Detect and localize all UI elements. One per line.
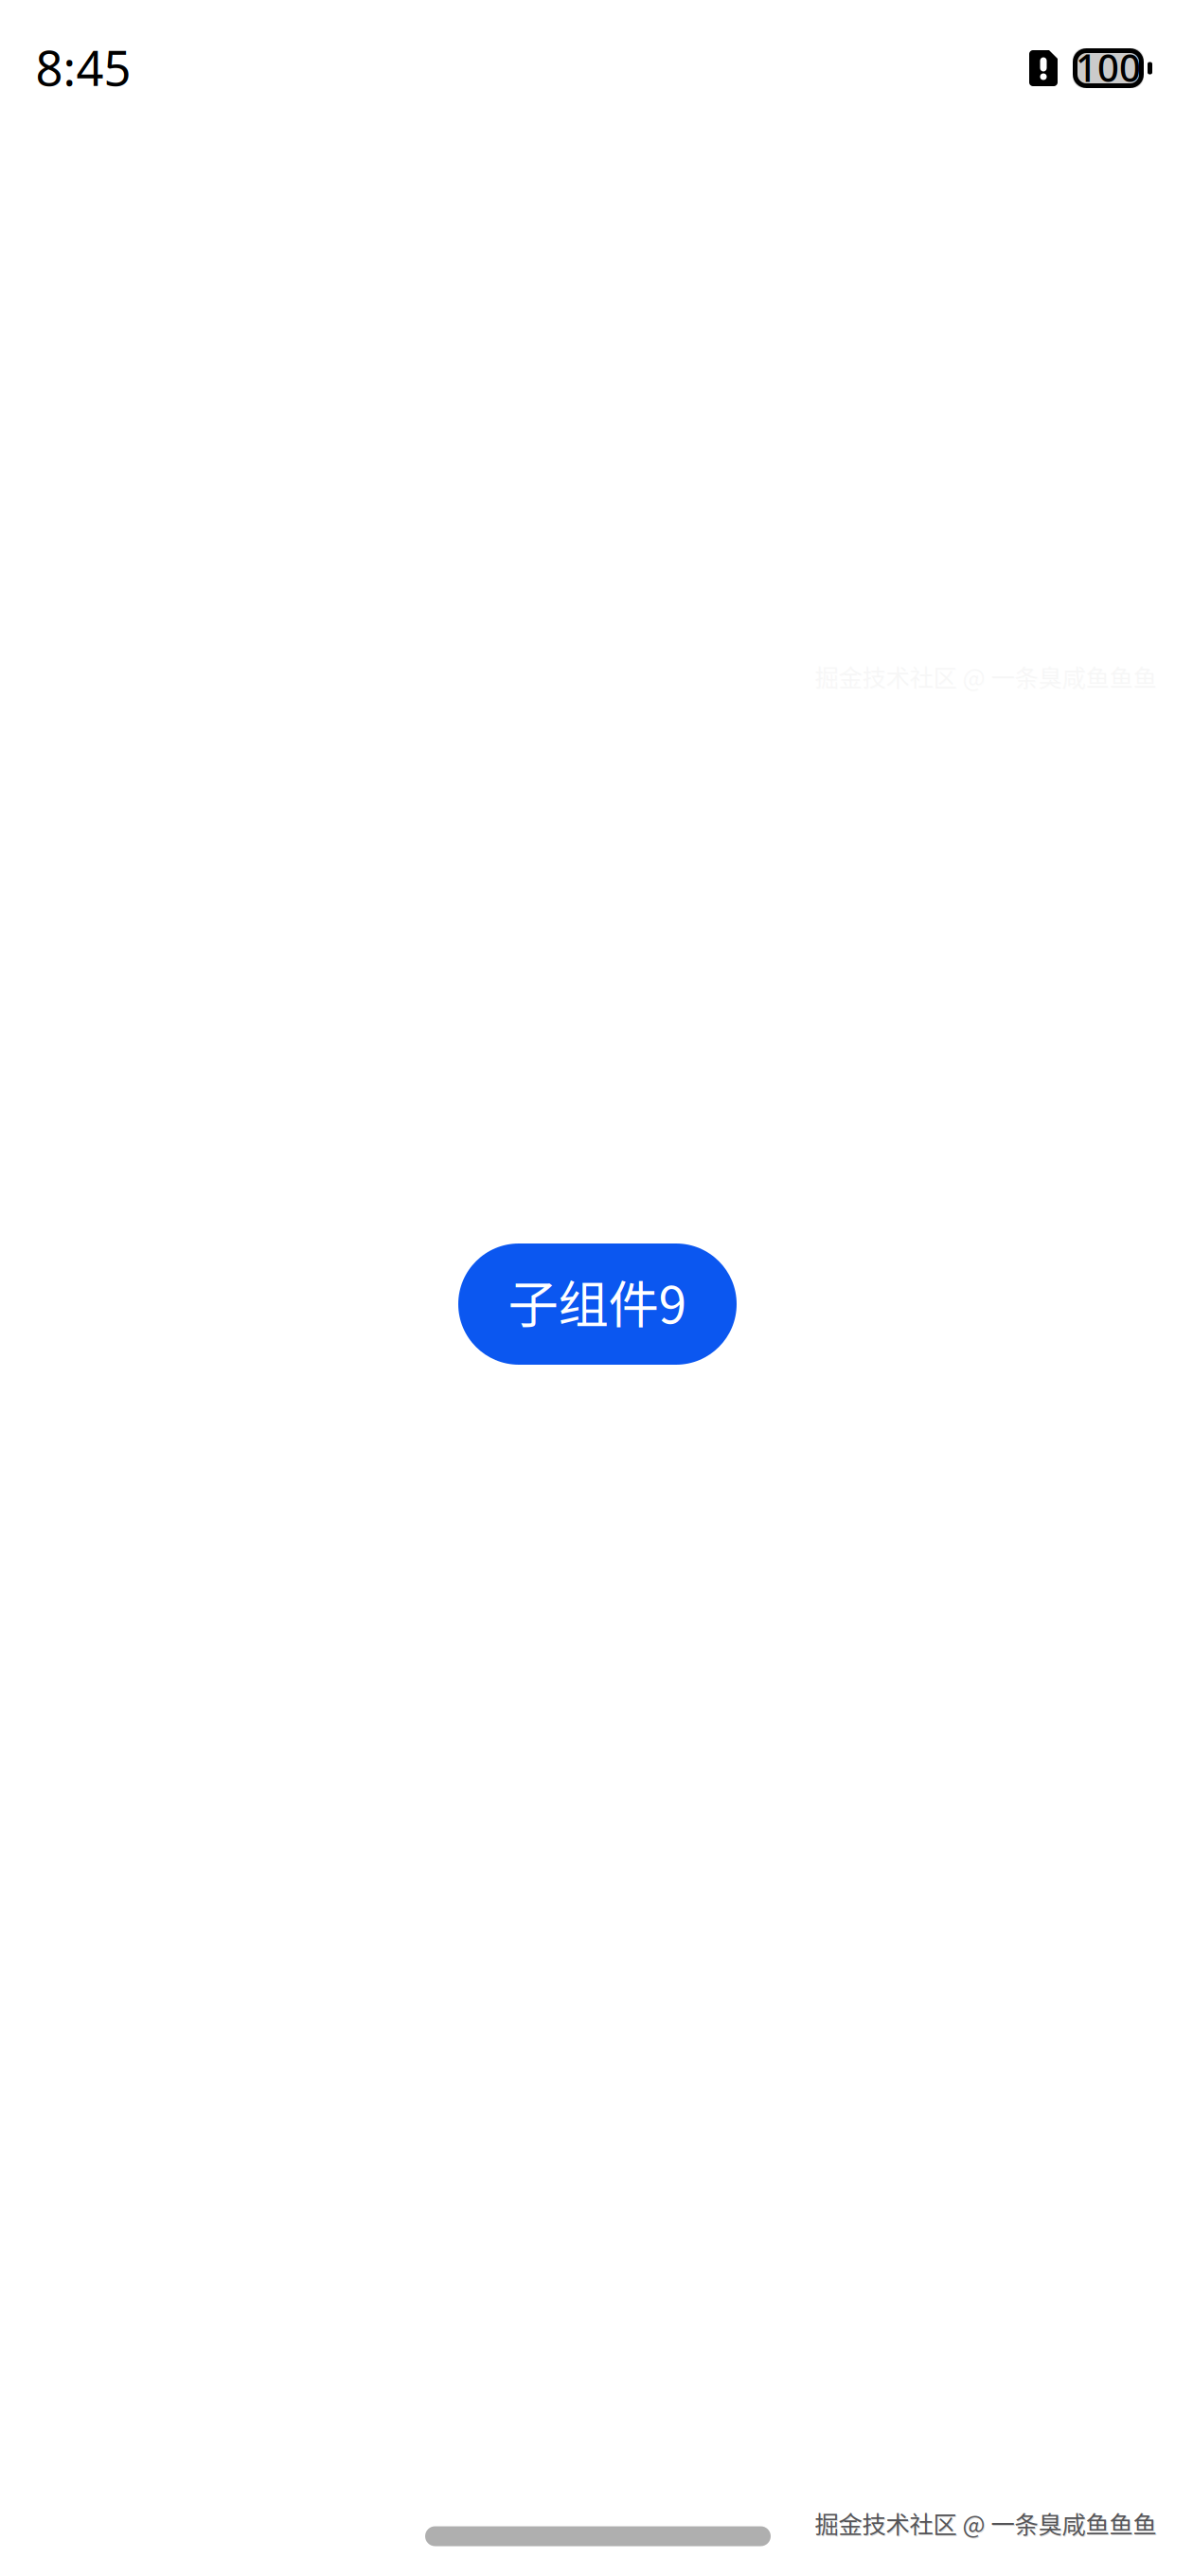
staticText: 子组件9 <box>508 1265 687 1338</box>
staticText: 掘金技术社区 @ 一条臭咸鱼鱼鱼 <box>816 2507 1157 2541</box>
staticText: 8:45 <box>36 35 131 99</box>
staticText: 100 <box>1076 42 1141 92</box>
staticText: 掘金技术社区 @ 一条臭咸鱼鱼鱼 <box>815 2506 1157 2540</box>
button[interactable]: 子组件9 <box>458 1243 737 1365</box>
